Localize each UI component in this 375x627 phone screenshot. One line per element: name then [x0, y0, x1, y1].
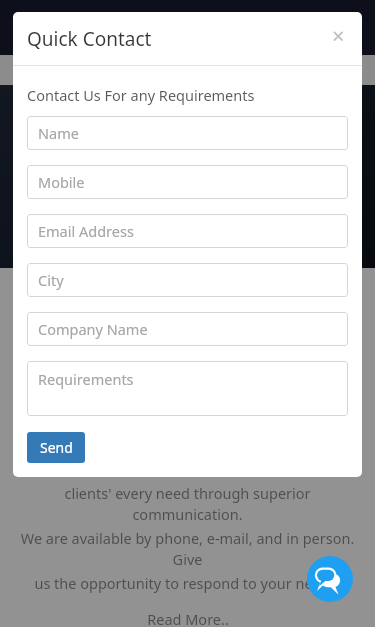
staticText: Read More.. — [147, 609, 229, 627]
button[interactable]: Email Address — [27, 214, 348, 248]
button[interactable]: Send — [27, 432, 85, 463]
staticText: Quick Contact — [27, 26, 152, 52]
button[interactable]: Mobile — [27, 165, 348, 199]
button[interactable]: Open chat — [307, 556, 353, 602]
staticText: We are available by phone, e-mail, and i… — [14, 528, 361, 570]
staticText: Company Name — [38, 319, 148, 339]
staticText: clients' every need through superior com… — [14, 483, 361, 525]
button[interactable]: Menu — [321, 13, 361, 43]
staticText: Send — [40, 438, 73, 457]
button[interactable]: Close — [324, 20, 352, 48]
button[interactable]: City — [27, 263, 348, 297]
staticText: × — [332, 20, 345, 48]
staticText: Requirements — [38, 369, 134, 389]
button[interactable]: Name — [27, 116, 348, 150]
button[interactable]: Company Name — [27, 312, 348, 346]
staticText: Email Address — [38, 221, 134, 241]
button[interactable]: Read More.. — [141, 607, 235, 627]
staticText: Contact Us For any Requirements — [27, 85, 255, 105]
staticText: Name — [38, 123, 79, 143]
staticText: Mobile — [38, 172, 85, 192]
staticText: us the opportunity to respond to your ne… — [14, 573, 361, 593]
button[interactable]: Requirements — [27, 361, 348, 416]
staticText: City — [38, 270, 64, 290]
